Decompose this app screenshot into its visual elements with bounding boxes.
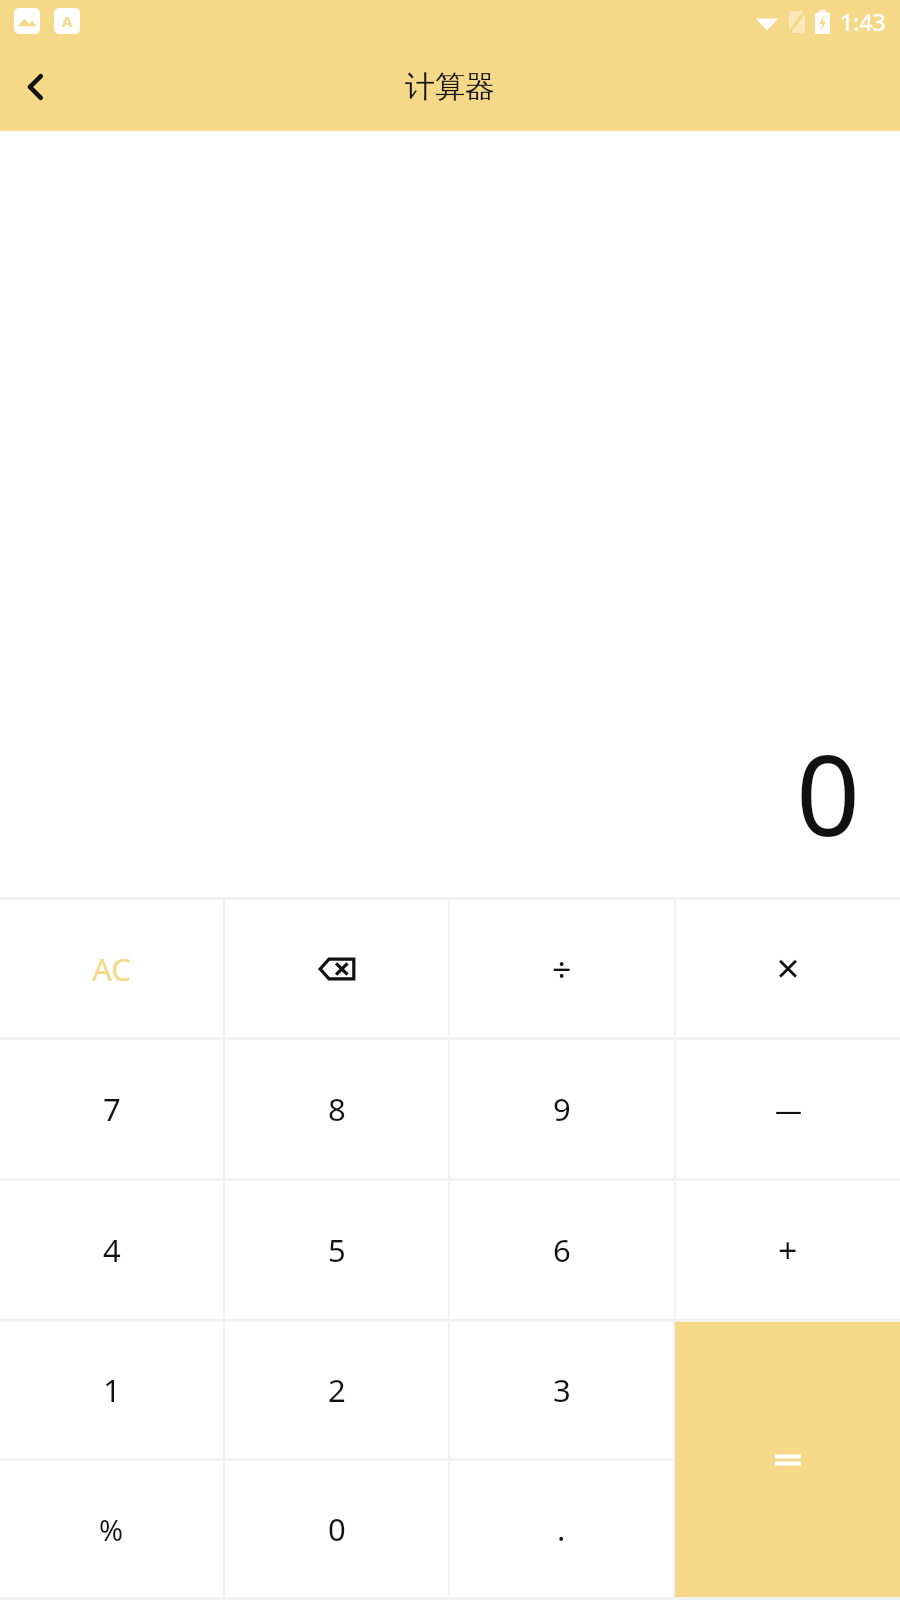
button[interactable]: 1 <box>0 1322 223 1458</box>
button[interactable]: 6 <box>450 1181 674 1319</box>
staticText: ÷ <box>552 946 572 992</box>
staticText: A <box>62 11 73 31</box>
button[interactable]: ÷ <box>450 900 674 1037</box>
button[interactable]: 9 <box>450 1040 674 1178</box>
staticText: 7 <box>103 1088 121 1130</box>
button[interactable]: ✕ <box>676 900 900 1037</box>
button[interactable]: 8 <box>225 1040 448 1178</box>
staticText: % <box>99 1510 124 1549</box>
button[interactable]: 2 <box>225 1322 448 1458</box>
button[interactable]: % <box>0 1461 223 1597</box>
button[interactable]: . <box>450 1461 673 1597</box>
staticText: 6 <box>553 1229 571 1271</box>
button[interactable]: Equals <box>675 1322 900 1597</box>
button[interactable]: Back <box>0 51 72 123</box>
staticText: 2 <box>328 1369 346 1411</box>
staticText: 9 <box>553 1088 571 1130</box>
staticText: 3 <box>553 1369 571 1411</box>
staticText: 0 <box>795 716 860 869</box>
staticText: . <box>557 1508 566 1550</box>
button[interactable]: — <box>676 1040 900 1178</box>
staticText: 计算器 <box>405 68 495 106</box>
staticText: 1:43 <box>840 6 886 37</box>
staticText: 1 <box>103 1369 121 1411</box>
staticText: AC <box>92 948 131 990</box>
button[interactable]: + <box>676 1181 900 1319</box>
staticText: — <box>775 1091 802 1128</box>
button[interactable]: 0 <box>225 1461 448 1597</box>
staticText: 4 <box>103 1229 121 1271</box>
button[interactable]: 5 <box>225 1181 448 1319</box>
staticText: 0 <box>328 1508 346 1550</box>
button[interactable]: 7 <box>0 1040 223 1178</box>
staticText: 8 <box>328 1088 346 1130</box>
staticText: ✕ <box>775 951 801 987</box>
button[interactable]: Backspace <box>225 900 448 1037</box>
staticText: 5 <box>328 1229 346 1271</box>
button[interactable]: 3 <box>450 1322 673 1458</box>
button[interactable]: 4 <box>0 1181 223 1319</box>
button[interactable]: AC <box>0 900 223 1037</box>
staticText: + <box>778 1227 798 1273</box>
